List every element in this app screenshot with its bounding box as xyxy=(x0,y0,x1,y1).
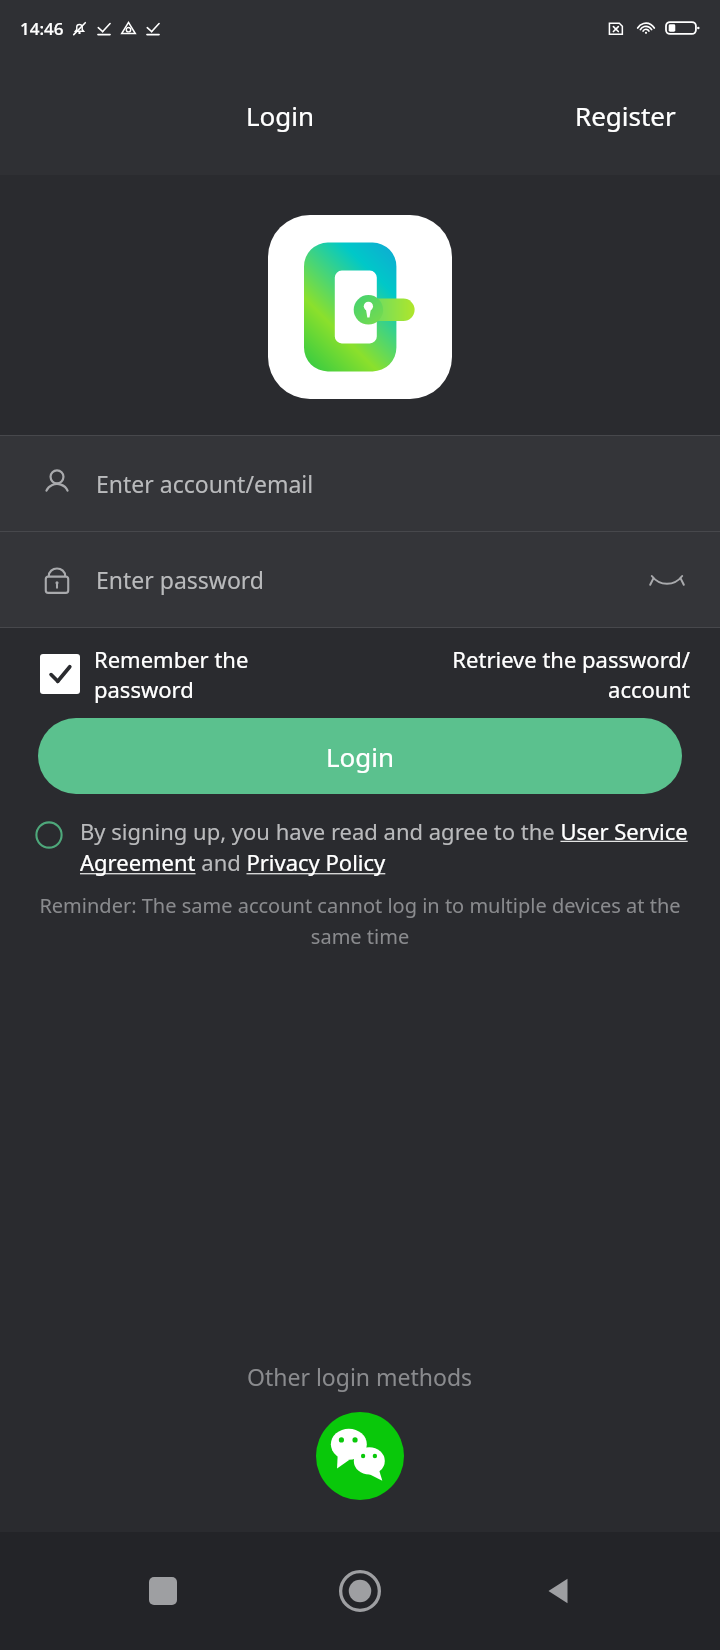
button[interactable]: Back xyxy=(523,1556,593,1626)
staticText: Login xyxy=(326,739,395,774)
button[interactable]: Remember the password xyxy=(40,644,400,704)
button[interactable]: Home xyxy=(325,1556,395,1626)
button[interactable]: By signing up, you have read and agree t… xyxy=(34,816,690,878)
staticText: Retrieve the password/ account xyxy=(400,644,690,704)
staticText: Register xyxy=(575,98,676,133)
staticText: 14:46 xyxy=(20,17,64,40)
button[interactable]: Retrieve the password/ account xyxy=(400,644,690,704)
button[interactable]: Login xyxy=(38,718,682,794)
button[interactable]: Register xyxy=(561,90,690,141)
staticText: Other login methods xyxy=(247,1361,473,1392)
button[interactable]: Login xyxy=(232,90,329,141)
staticText: Remember the password xyxy=(94,644,249,704)
staticText: Enter account/email xyxy=(96,468,314,499)
staticText: By signing up, you have read and agree t… xyxy=(80,816,690,878)
staticText: Login xyxy=(246,98,315,133)
button[interactable]: Show password xyxy=(644,557,690,603)
button[interactable]: Enter password xyxy=(0,532,720,627)
button[interactable]: Enter account/email xyxy=(0,436,720,531)
button[interactable]: Recent apps xyxy=(128,1556,198,1626)
button[interactable]: Login with WeChat xyxy=(316,1412,404,1500)
staticText: Enter password xyxy=(96,564,265,595)
staticText: Reminder: The same account cannot log in… xyxy=(14,892,706,949)
